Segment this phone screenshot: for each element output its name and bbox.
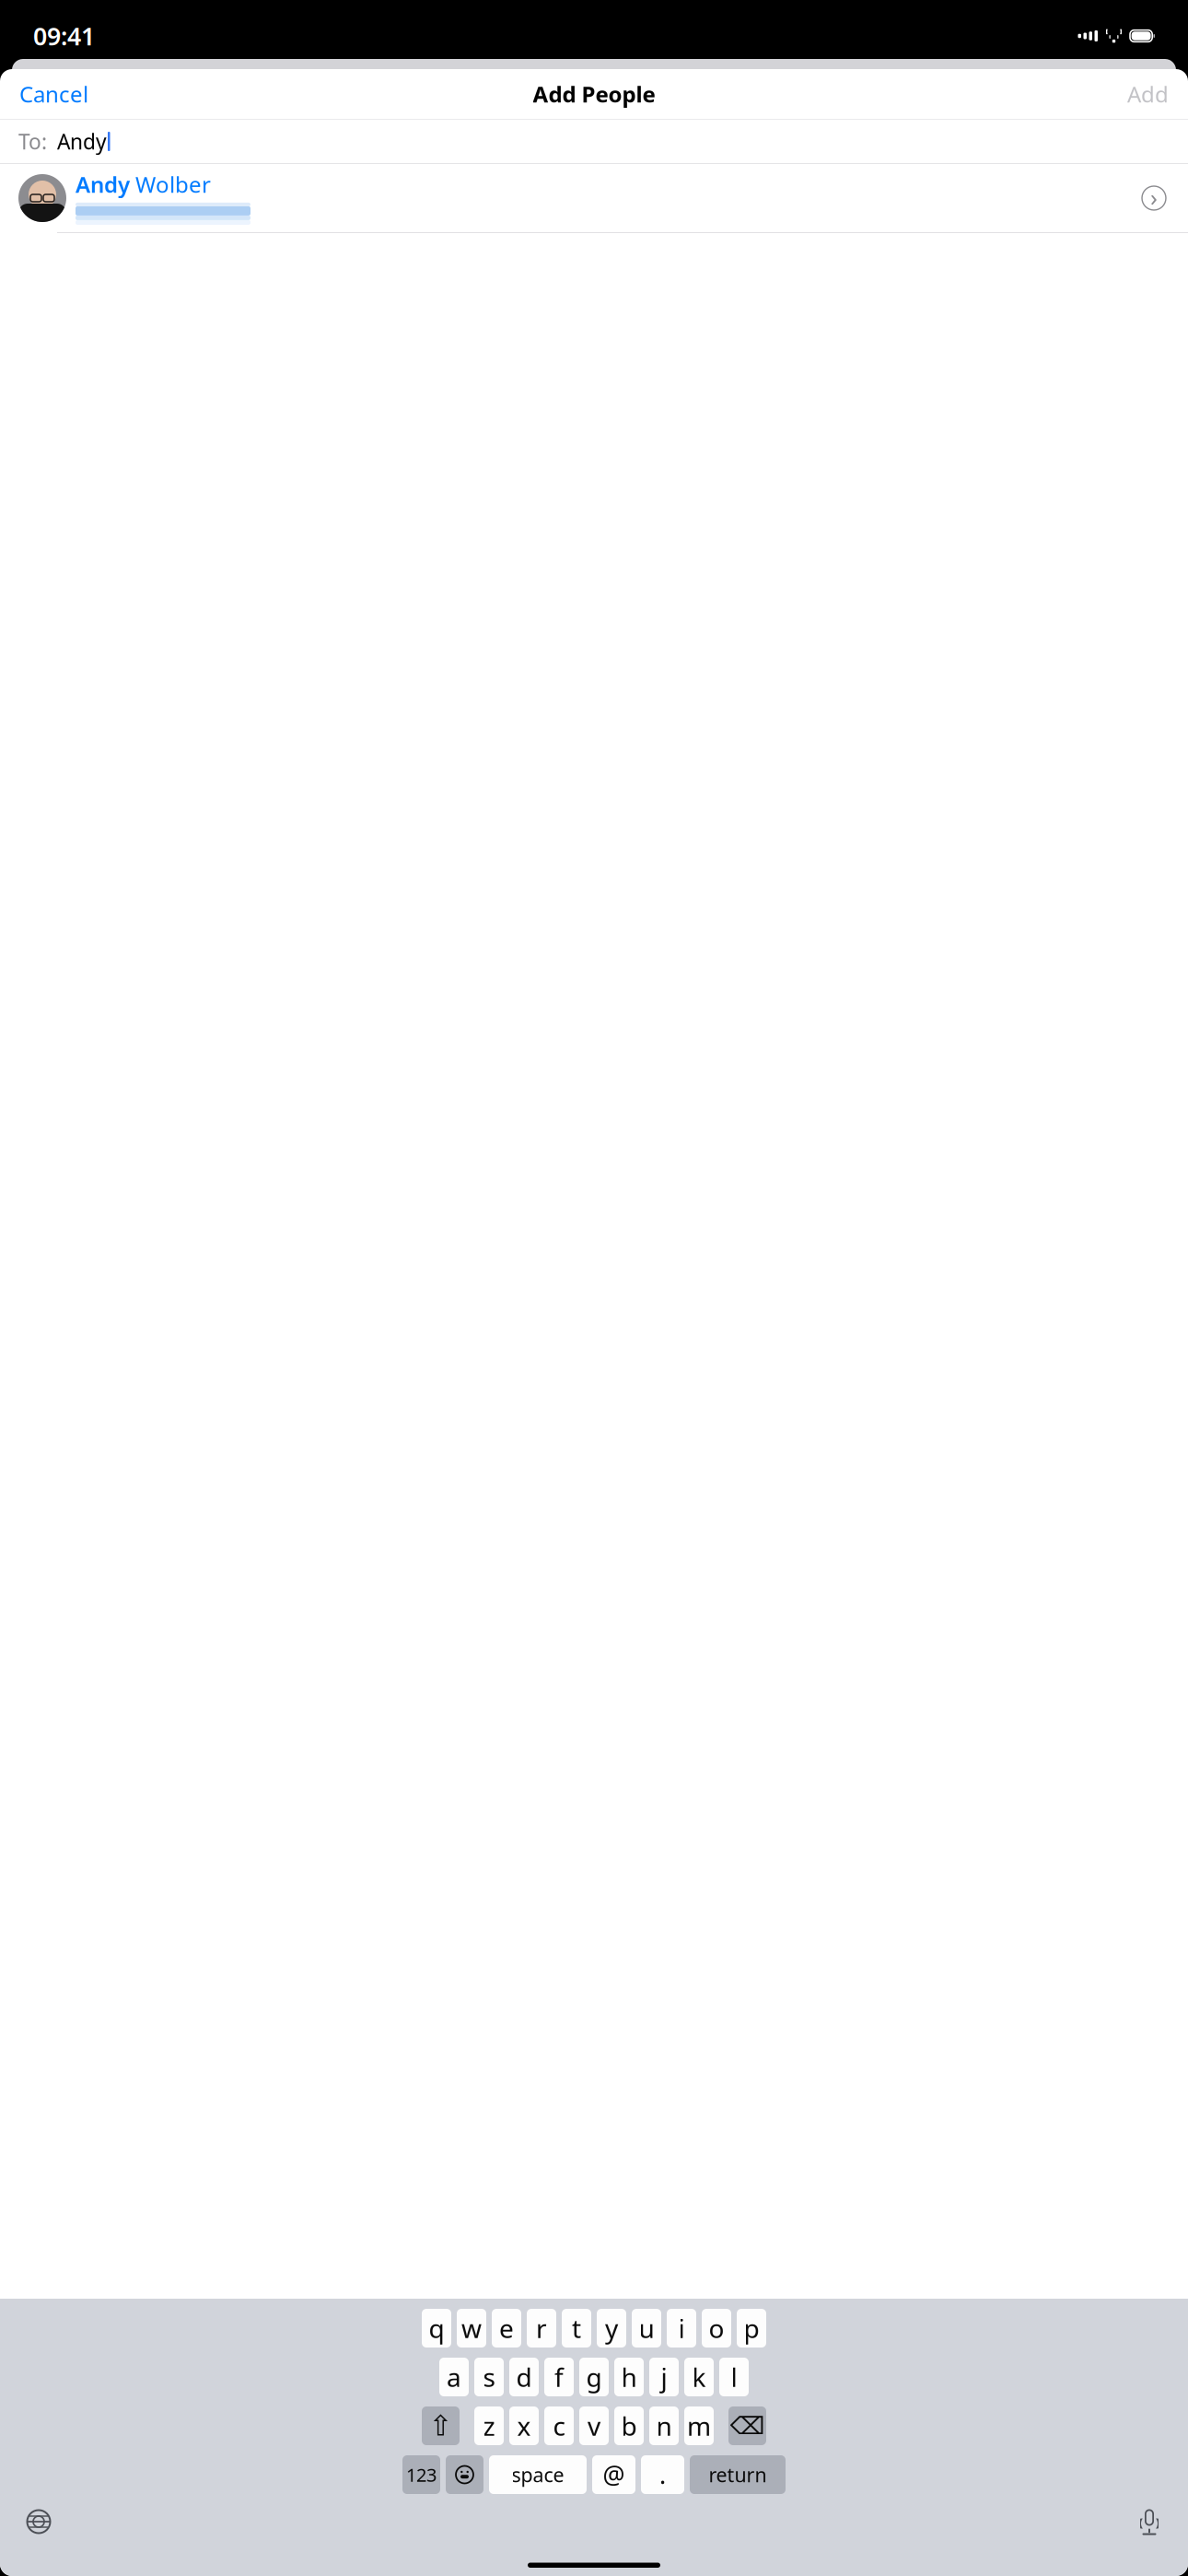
button[interactable]: q [422, 2309, 451, 2348]
button[interactable]: return [690, 2455, 786, 2494]
button[interactable]: space [489, 2455, 587, 2494]
button[interactable]: Add [1124, 71, 1172, 117]
button[interactable]: j [649, 2358, 679, 2396]
button[interactable]: 123 [402, 2455, 440, 2494]
staticText: a [447, 2360, 461, 2394]
staticText: ⇧ [429, 2410, 453, 2442]
button[interactable]: b [614, 2406, 644, 2445]
button[interactable]: @ [592, 2455, 635, 2494]
staticText: j [661, 2360, 667, 2394]
staticText: d [516, 2360, 532, 2394]
staticText: q [429, 2311, 444, 2345]
staticText: 09:41 [33, 20, 95, 52]
staticText: x [517, 2409, 531, 2443]
button[interactable]: e [492, 2309, 521, 2348]
staticText: return [709, 2462, 767, 2488]
staticText: z [483, 2409, 495, 2443]
staticText: r [536, 2311, 547, 2345]
staticText: Andy [76, 170, 130, 199]
staticText: w [461, 2311, 482, 2345]
staticText: Add People [533, 79, 655, 109]
button[interactable]: Shift [422, 2406, 460, 2445]
button[interactable]: a [439, 2358, 469, 2396]
staticText: c [553, 2409, 565, 2443]
staticText: p [744, 2311, 759, 2345]
staticText: u [639, 2311, 654, 2345]
button[interactable]: n [649, 2406, 679, 2445]
staticText: m [687, 2409, 711, 2443]
button[interactable]: u [632, 2309, 661, 2348]
button[interactable]: Next keyboard [18, 2501, 59, 2542]
staticText: 123 [406, 2462, 437, 2487]
button[interactable]: m [684, 2406, 714, 2445]
button[interactable]: h [614, 2358, 644, 2396]
button[interactable]: d [509, 2358, 539, 2396]
button[interactable]: v [579, 2406, 609, 2445]
button[interactable]: Dictation [1129, 2501, 1170, 2542]
staticText: Wolber [130, 170, 211, 199]
button[interactable]: s [474, 2358, 504, 2396]
button[interactable]: o [702, 2309, 731, 2348]
staticText: To: [18, 128, 47, 155]
button[interactable]: r [527, 2309, 556, 2348]
staticText: i [678, 2311, 685, 2345]
staticText: o [709, 2311, 724, 2345]
staticText: h [621, 2360, 637, 2394]
staticText: › [1150, 182, 1158, 213]
staticText: t [572, 2311, 581, 2345]
staticText: e [499, 2311, 514, 2345]
staticText: y [605, 2311, 618, 2345]
button[interactable]: k [684, 2358, 714, 2396]
staticText: Add [1127, 79, 1169, 109]
button[interactable]: t [562, 2309, 591, 2348]
button[interactable]: c [544, 2406, 574, 2445]
staticText: Cancel [19, 79, 88, 109]
button[interactable]: w [457, 2309, 486, 2348]
staticText: ⌫ [730, 2412, 765, 2440]
button[interactable]: y [597, 2309, 626, 2348]
staticText: v [588, 2409, 600, 2443]
button[interactable]: i [667, 2309, 696, 2348]
staticText: g [586, 2360, 602, 2394]
button[interactable]: Andy [0, 164, 1188, 232]
button[interactable]: p [737, 2309, 766, 2348]
button[interactable]: f [544, 2358, 574, 2396]
staticText: space [512, 2462, 564, 2488]
staticText: k [692, 2360, 706, 2394]
staticText: Andy [57, 128, 107, 155]
button[interactable]: . [641, 2455, 684, 2494]
button[interactable]: x [509, 2406, 539, 2445]
button[interactable]: Delete [728, 2406, 766, 2445]
button[interactable]: Contact details [1138, 182, 1170, 214]
staticText: l [731, 2360, 737, 2394]
staticText: n [656, 2409, 672, 2443]
button[interactable]: Emoji [446, 2455, 483, 2494]
button[interactable]: g [579, 2358, 609, 2396]
button[interactable]: Cancel [16, 71, 92, 117]
staticText: @ [603, 2458, 625, 2491]
button[interactable]: l [719, 2358, 749, 2396]
button[interactable]: z [474, 2406, 504, 2445]
staticText: b [621, 2409, 637, 2443]
staticText: s [483, 2360, 495, 2394]
staticText: f [554, 2360, 564, 2394]
staticText: . [659, 2458, 666, 2491]
